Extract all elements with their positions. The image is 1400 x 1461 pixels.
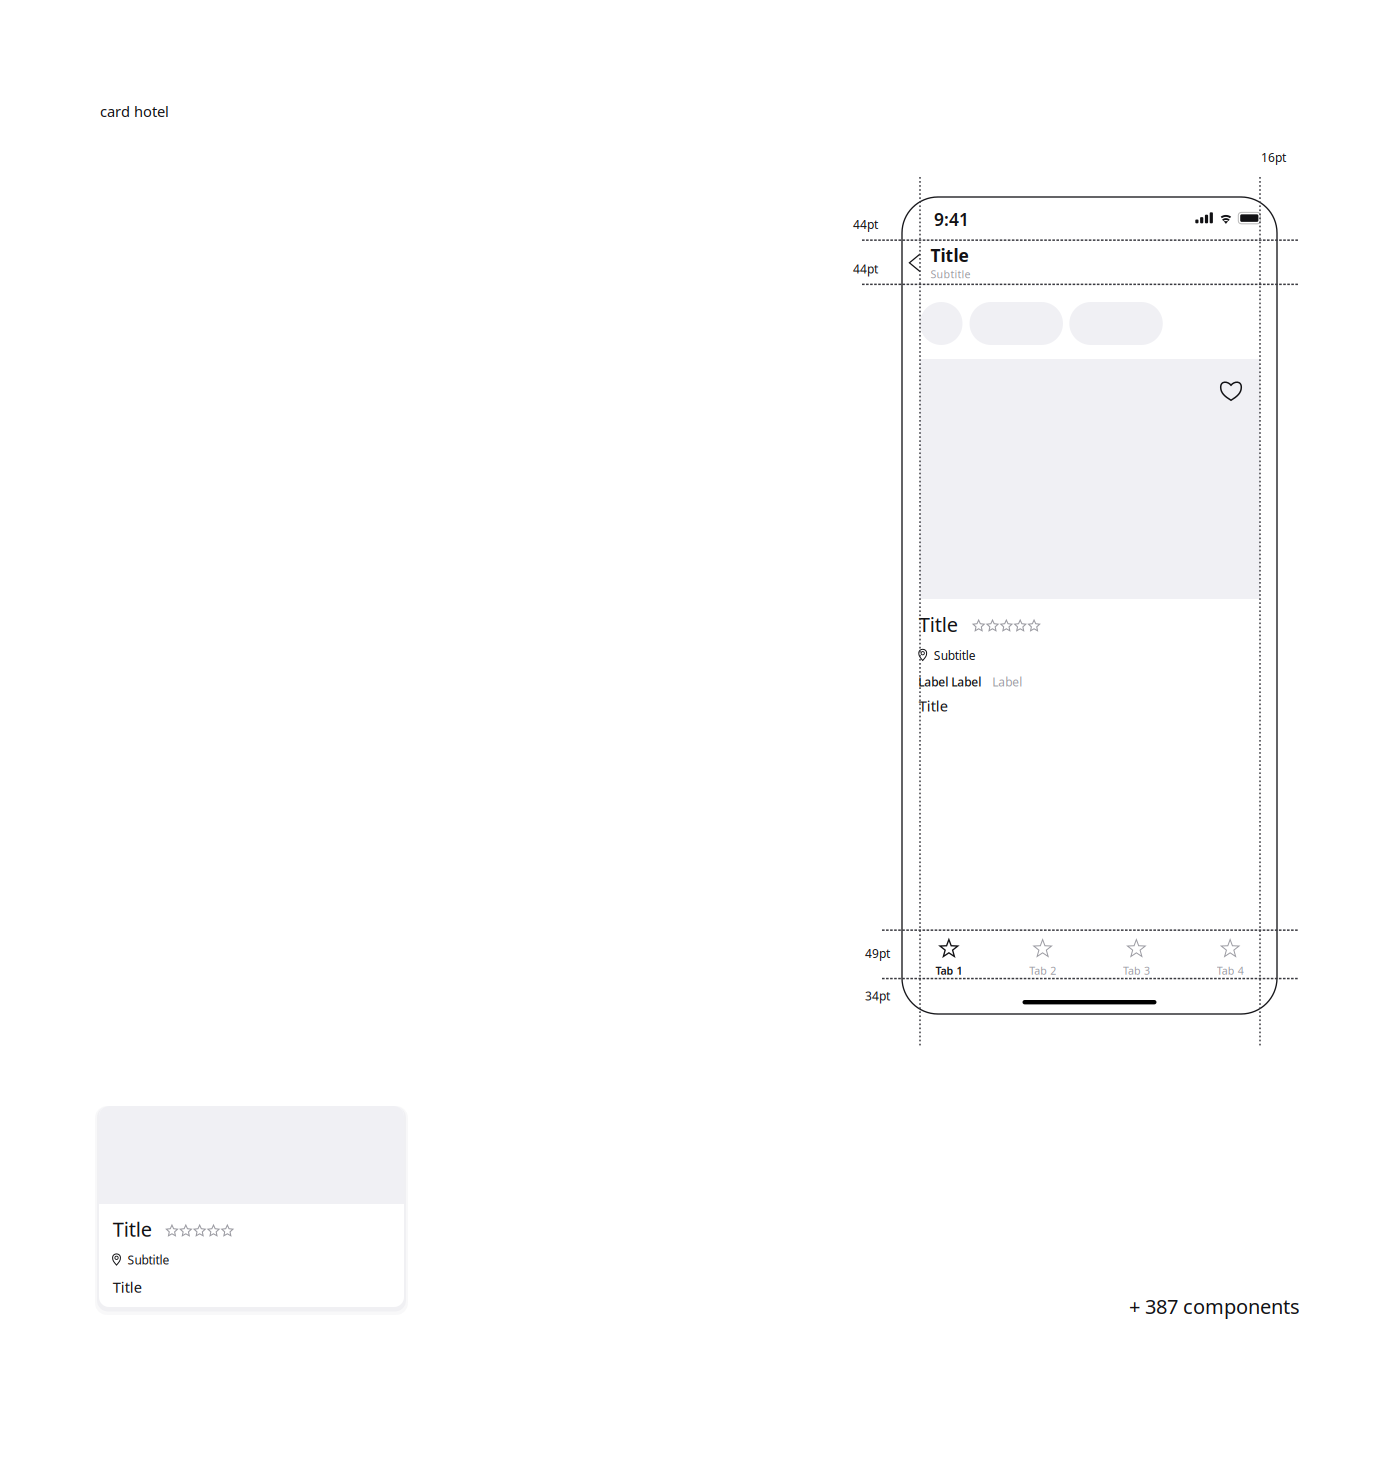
staticText: Title: [919, 696, 948, 715]
staticText: 34pt: [865, 988, 890, 1004]
staticText: Subtitle: [930, 267, 970, 281]
button[interactable]: Title: [99, 1106, 404, 1307]
button[interactable]: Tab 1: [902, 930, 996, 978]
staticText: Tab 2: [1029, 963, 1056, 978]
staticText: Title: [113, 1277, 142, 1297]
button[interactable]: Tab 4: [1183, 930, 1277, 978]
staticText: Title: [930, 244, 968, 267]
button[interactable]: Filter option: [902, 197, 995, 240]
staticText: 9:41: [934, 208, 969, 231]
staticText: Title: [919, 611, 958, 638]
staticText: 16pt: [1261, 149, 1286, 165]
staticText: Tab 3: [1123, 963, 1150, 978]
staticText: Title: [113, 1216, 152, 1242]
staticText: + 387 components: [1129, 1293, 1300, 1320]
staticText: 49pt: [865, 945, 890, 961]
staticText: Subtitle: [934, 647, 976, 663]
button[interactable]: Filter: [902, 197, 944, 240]
staticText: Label Label: [918, 674, 981, 690]
staticText: Tab 1: [935, 963, 962, 978]
staticText: card hotel: [100, 101, 169, 121]
staticText: 44pt: [853, 216, 878, 232]
button[interactable]: Favourite: [902, 197, 938, 233]
staticText: Tab 4: [1217, 963, 1244, 978]
button[interactable]: Tab 3: [1089, 930, 1183, 978]
staticText: 44pt: [853, 261, 878, 277]
button[interactable]: Tab 2: [996, 930, 1090, 978]
staticText: Subtitle: [128, 1252, 170, 1268]
staticText: Label: [992, 674, 1022, 690]
button[interactable]: Back: [902, 197, 924, 223]
button[interactable]: Filter option: [902, 197, 995, 240]
